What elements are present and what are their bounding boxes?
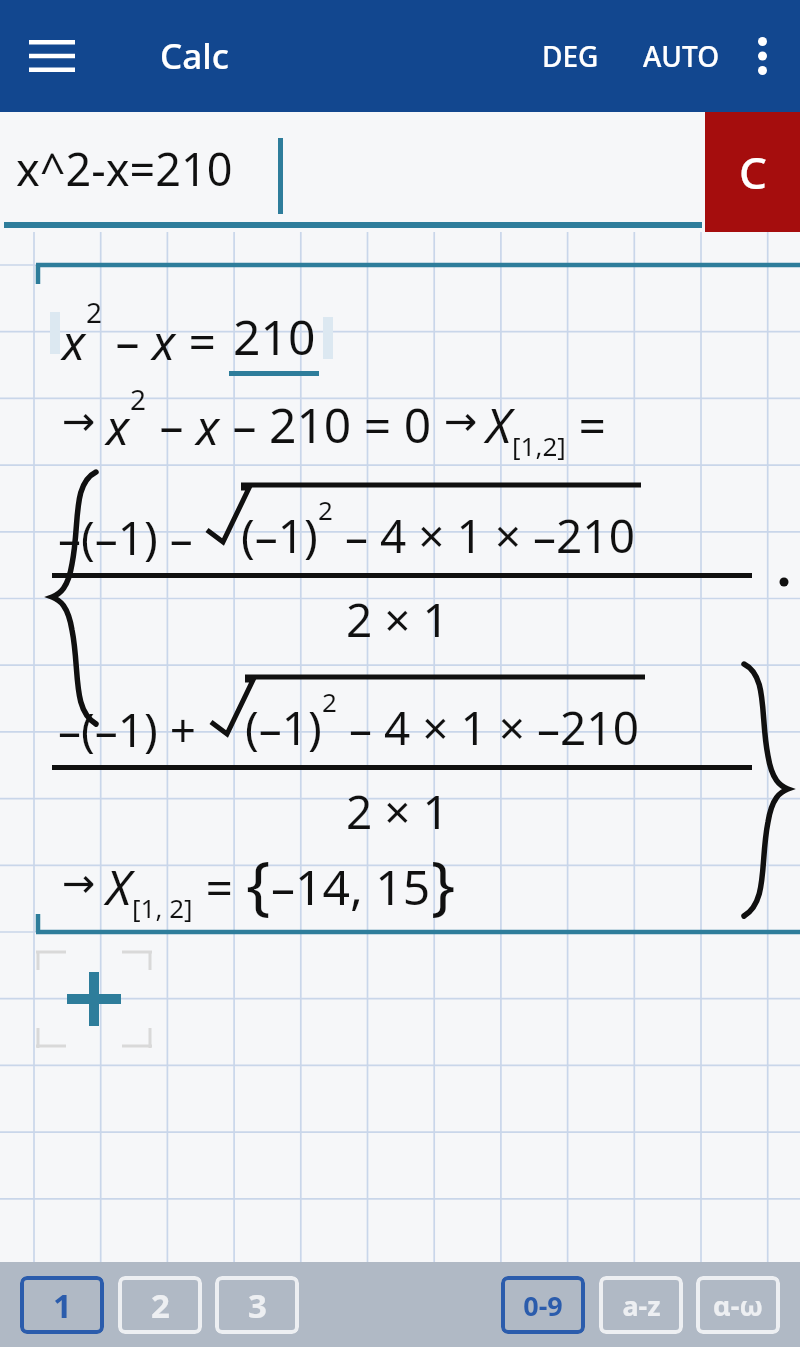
staticText: 2 — [322, 684, 337, 719]
staticText: Calc — [160, 32, 229, 80]
staticText: 2 — [151, 1283, 170, 1328]
button[interactable]: 3 — [215, 1276, 299, 1334]
staticText: –(–1) – — [58, 506, 193, 569]
staticText: (–1) — [241, 504, 318, 567]
staticText: 0-9 — [523, 1287, 563, 1324]
button[interactable]: AUTO — [631, 25, 732, 87]
button[interactable]: Add new expression — [36, 950, 152, 1048]
staticText: = — [566, 392, 606, 457]
staticText: → — [444, 398, 478, 445]
staticText: DEG — [542, 37, 599, 75]
staticText: –(–1) + — [58, 698, 197, 761]
staticText: x — [62, 309, 86, 374]
button[interactable]: More options — [732, 26, 792, 86]
staticText: AUTO — [643, 37, 720, 75]
button[interactable]: 1 — [20, 1276, 104, 1334]
staticText: 2 — [318, 492, 333, 527]
button[interactable]: DEG — [530, 25, 611, 87]
staticText: x — [152, 309, 176, 374]
staticText: 1 — [53, 1283, 72, 1328]
button[interactable]: Navigation menu — [22, 26, 82, 86]
staticText: 2 × 1 — [346, 588, 449, 651]
staticText: = — [193, 854, 246, 919]
staticText: x — [196, 394, 220, 459]
staticText: = — [176, 308, 229, 373]
staticText: 3 — [248, 1283, 267, 1328]
staticText: – 210 = 0 — [220, 392, 444, 457]
staticText: α-ω — [713, 1287, 763, 1324]
button[interactable]: 2 — [118, 1276, 202, 1334]
staticText: – — [147, 392, 196, 457]
staticText: 2 — [86, 293, 103, 331]
button[interactable]: C — [705, 112, 800, 232]
staticText: 2 × 1 — [346, 780, 449, 843]
staticText: → — [62, 398, 96, 445]
staticText: 210 — [233, 304, 316, 369]
staticText: X — [106, 854, 132, 919]
staticText: → — [62, 860, 96, 907]
staticText: – 4 × 1 × –210 — [337, 696, 639, 759]
button[interactable]: 0-9 — [501, 1276, 585, 1334]
staticText: (–1) — [245, 696, 322, 759]
staticText: [1, 2] — [132, 890, 193, 925]
button[interactable]: α-ω — [696, 1276, 780, 1334]
staticText: a-z — [622, 1287, 661, 1324]
staticText: – 4 × 1 × –210 — [333, 504, 635, 567]
staticText: 2 — [130, 380, 147, 418]
staticText: { — [246, 840, 271, 927]
staticText: X — [486, 392, 512, 457]
staticText: } — [431, 840, 456, 927]
staticText: C — [739, 142, 767, 202]
staticText: x^2-x=210 — [16, 138, 233, 199]
button[interactable]: a-z — [599, 1276, 683, 1334]
staticText: –14, 15 — [271, 854, 431, 919]
staticText: – — [103, 308, 152, 373]
staticText: [1,2] — [512, 428, 566, 463]
staticText: x — [106, 394, 130, 459]
